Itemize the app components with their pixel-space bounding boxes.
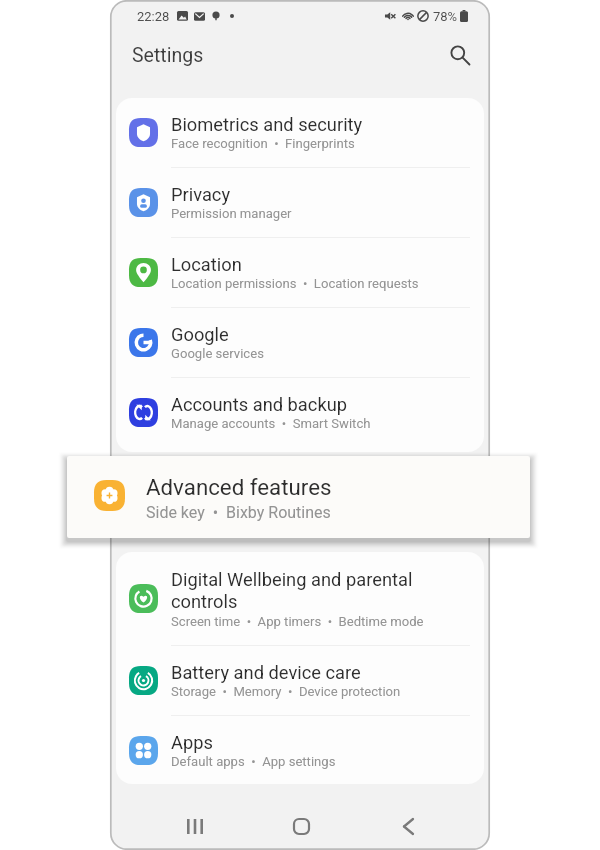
staticText: Digital Wellbeing and parental controls: [171, 569, 468, 613]
button[interactable]: Digital Wellbeing and parental controls: [116, 552, 484, 645]
button[interactable]: Back: [386, 810, 431, 842]
staticText: Battery and device care: [171, 662, 361, 683]
staticText: Manage accounts • Smart Switch: [171, 416, 371, 431]
staticText: Storage • Memory • Device protection: [171, 684, 401, 699]
staticText: Apps: [171, 732, 213, 753]
staticText: Permission manager: [171, 206, 292, 221]
staticText: Screen time • App timers • Bedtime mode: [171, 614, 424, 629]
staticText: Accounts and backup: [171, 394, 348, 415]
button[interactable]: Apps: [116, 716, 484, 784]
staticText: Side key • Bixby Routines: [146, 503, 331, 522]
button[interactable]: Recents: [172, 810, 217, 842]
button[interactable]: Advanced features: [67, 456, 530, 538]
staticText: 78%: [433, 9, 458, 24]
staticText: Advanced features: [146, 474, 332, 500]
button[interactable]: Search: [441, 36, 479, 74]
button[interactable]: Biometrics and security: [116, 98, 484, 167]
button[interactable]: Location: [116, 238, 484, 307]
button[interactable]: Home: [279, 810, 324, 842]
button[interactable]: Privacy: [116, 168, 484, 237]
staticText: Google: [171, 324, 229, 345]
button[interactable]: Accounts and backup: [116, 378, 484, 447]
staticText: Location permissions • Location requests: [171, 276, 419, 291]
staticText: Settings: [132, 44, 204, 67]
button[interactable]: Google: [116, 308, 484, 377]
staticText: Face recognition • Fingerprints: [171, 136, 355, 151]
staticText: Biometrics and security: [171, 114, 363, 135]
staticText: Default apps • App settings: [171, 754, 336, 769]
staticText: Privacy: [171, 184, 231, 205]
button[interactable]: Battery and device care: [116, 646, 484, 715]
staticText: 22:28: [137, 9, 170, 24]
staticText: Location: [171, 254, 242, 275]
staticText: Google services: [171, 346, 264, 361]
